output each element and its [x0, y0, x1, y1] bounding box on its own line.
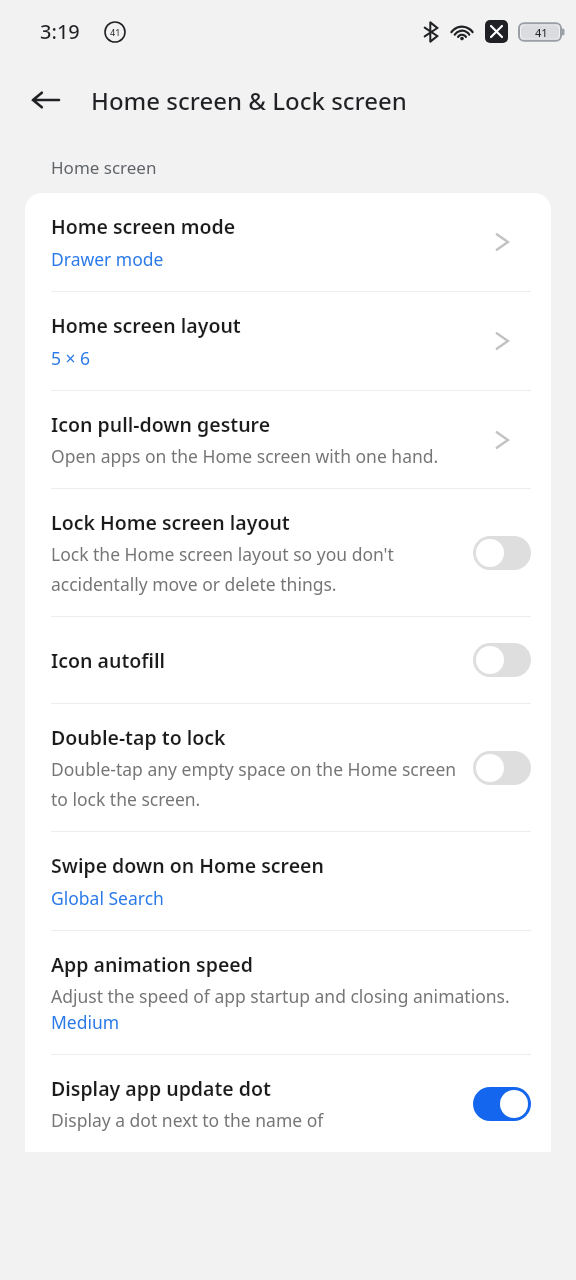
staticText: Adjust the speed of app startup and clos…: [51, 984, 510, 1008]
button[interactable]: Off: [473, 536, 531, 570]
button[interactable]: Lock Home screen layout: [25, 489, 551, 616]
button[interactable]: Icon pull-down gesture: [25, 391, 551, 488]
staticText: 5 × 6: [51, 346, 91, 370]
staticText: 41: [110, 26, 121, 38]
staticText: 3:19: [40, 18, 80, 45]
staticText: Lock Home screen layout: [51, 509, 290, 536]
staticText: Swipe down on Home screen: [51, 852, 324, 879]
button[interactable]: Off: [473, 751, 531, 785]
staticText: Home screen: [51, 156, 157, 179]
staticText: Home screen layout: [51, 312, 241, 339]
button[interactable]: App animation speed: [25, 931, 551, 1054]
staticText: Lock the Home screen layout so you don't…: [51, 542, 463, 596]
button[interactable]: Off: [473, 643, 531, 677]
staticText: Medium: [51, 1010, 120, 1034]
staticText: Home screen mode: [51, 213, 236, 240]
staticText: Open apps on the Home screen with one ha…: [51, 444, 439, 468]
staticText: 41: [535, 25, 548, 40]
button[interactable]: On: [473, 1087, 531, 1121]
staticText: Icon autofill: [51, 647, 166, 674]
button[interactable]: Icon autofill: [25, 617, 551, 703]
staticText: Display a dot next to the name of: [51, 1108, 324, 1132]
staticText: Icon pull-down gesture: [51, 411, 271, 438]
button[interactable]: Double-tap to lock: [25, 704, 551, 831]
button[interactable]: Home screen mode: [25, 193, 551, 291]
staticText: Home screen & Lock screen: [91, 84, 407, 117]
staticText: Drawer mode: [51, 247, 164, 271]
staticText: App animation speed: [51, 951, 253, 978]
button[interactable]: Swipe down on Home screen: [25, 832, 551, 930]
staticText: Double-tap to lock: [51, 724, 226, 751]
button[interactable]: Home screen layout: [25, 292, 551, 390]
button[interactable]: Back: [22, 76, 70, 124]
staticText: Display app update dot: [51, 1075, 271, 1102]
staticText: Global Search: [51, 886, 164, 910]
button[interactable]: Display app update dot: [25, 1055, 551, 1152]
staticText: Double-tap any empty space on the Home s…: [51, 757, 463, 811]
